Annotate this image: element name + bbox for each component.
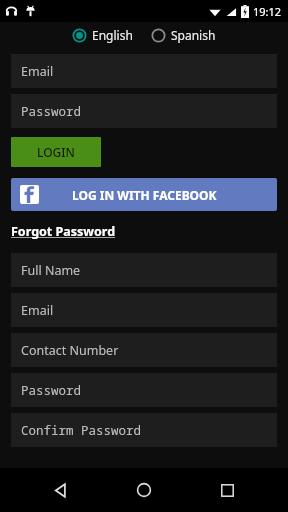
button[interactable]: Back	[39, 468, 83, 512]
button[interactable]: Email	[11, 54, 277, 88]
button[interactable]: Forgot Password	[11, 223, 116, 240]
staticText: Contact Number	[21, 342, 119, 359]
staticText: Password	[21, 103, 82, 120]
button[interactable]: Contact Number	[11, 333, 277, 367]
staticText: Full Name	[21, 262, 81, 279]
button[interactable]: Password	[11, 94, 277, 128]
staticText: Confirm Password	[21, 422, 142, 439]
staticText: 19:12	[253, 4, 282, 19]
button[interactable]: English	[70, 25, 135, 45]
button[interactable]: LOGIN	[11, 137, 101, 167]
staticText: LOGIN	[37, 144, 75, 160]
staticText: Password	[21, 382, 82, 399]
button[interactable]: LOG IN WITH FACEBOOK	[11, 178, 277, 211]
button[interactable]: Full Name	[11, 253, 277, 287]
button[interactable]: Password	[11, 373, 277, 407]
button[interactable]: Home	[122, 468, 166, 512]
button[interactable]: Email	[11, 293, 277, 327]
button[interactable]: Spanish	[149, 25, 218, 45]
button[interactable]: Recent apps	[205, 468, 249, 512]
staticText: English	[92, 27, 133, 43]
staticText: Email	[21, 63, 54, 80]
button[interactable]: Confirm Password	[11, 413, 277, 447]
staticText: Forgot Password	[11, 223, 116, 240]
staticText: LOG IN WITH FACEBOOK	[72, 187, 217, 203]
staticText: Spanish	[171, 27, 216, 43]
staticText: Email	[21, 302, 54, 319]
